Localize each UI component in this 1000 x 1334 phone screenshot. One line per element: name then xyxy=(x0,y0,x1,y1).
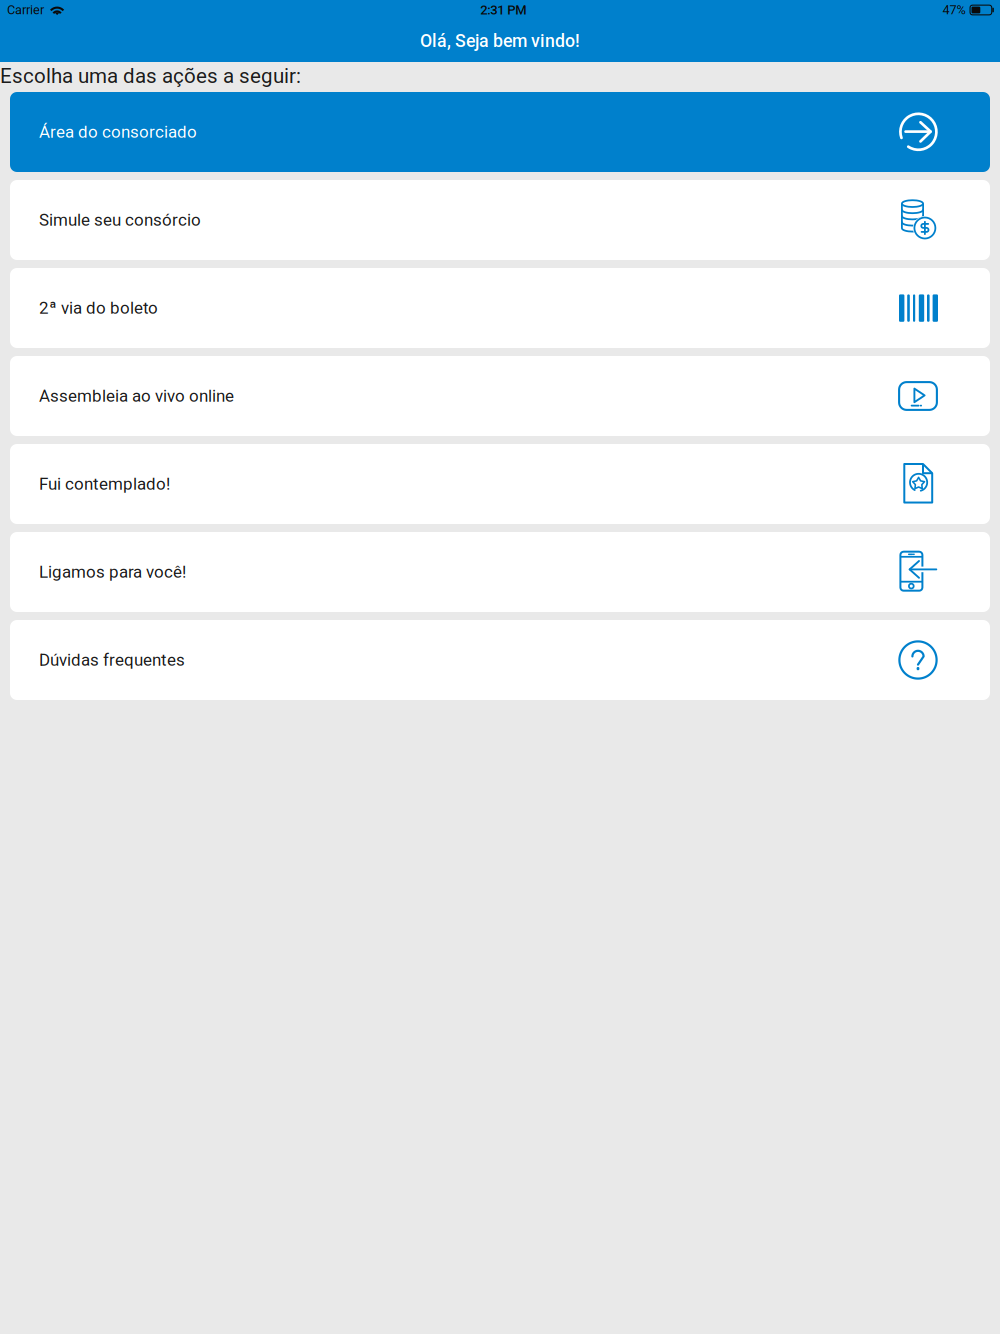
button[interactable]: Fui contemplado! xyxy=(10,444,990,524)
button[interactable]: 2ª via do boleto xyxy=(10,268,990,348)
staticText: Carrier xyxy=(7,3,44,17)
button[interactable]: Ligamos para você! xyxy=(10,532,990,612)
button[interactable]: Área do consorciado xyxy=(10,92,990,172)
staticText: Fui contemplado! xyxy=(39,474,170,494)
staticText: Escolha uma das ações a seguir: xyxy=(0,64,301,88)
staticText: 47% xyxy=(942,3,965,17)
button[interactable]: Dúvidas frequentes xyxy=(10,620,990,700)
button[interactable]: Assembleia ao vivo online xyxy=(10,356,990,436)
staticText: 2:31 PM xyxy=(480,2,526,18)
staticText: Simule seu consórcio xyxy=(39,210,201,230)
staticText: Assembleia ao vivo online xyxy=(39,386,234,406)
button[interactable]: Simule seu consórcio xyxy=(10,180,990,260)
staticText: 2ª via do boleto xyxy=(39,298,158,318)
staticText: Área do consorciado xyxy=(39,122,197,142)
staticText: Dúvidas frequentes xyxy=(39,650,185,670)
staticText: Olá, Seja bem vindo! xyxy=(420,31,580,51)
staticText: Ligamos para você! xyxy=(39,562,186,582)
